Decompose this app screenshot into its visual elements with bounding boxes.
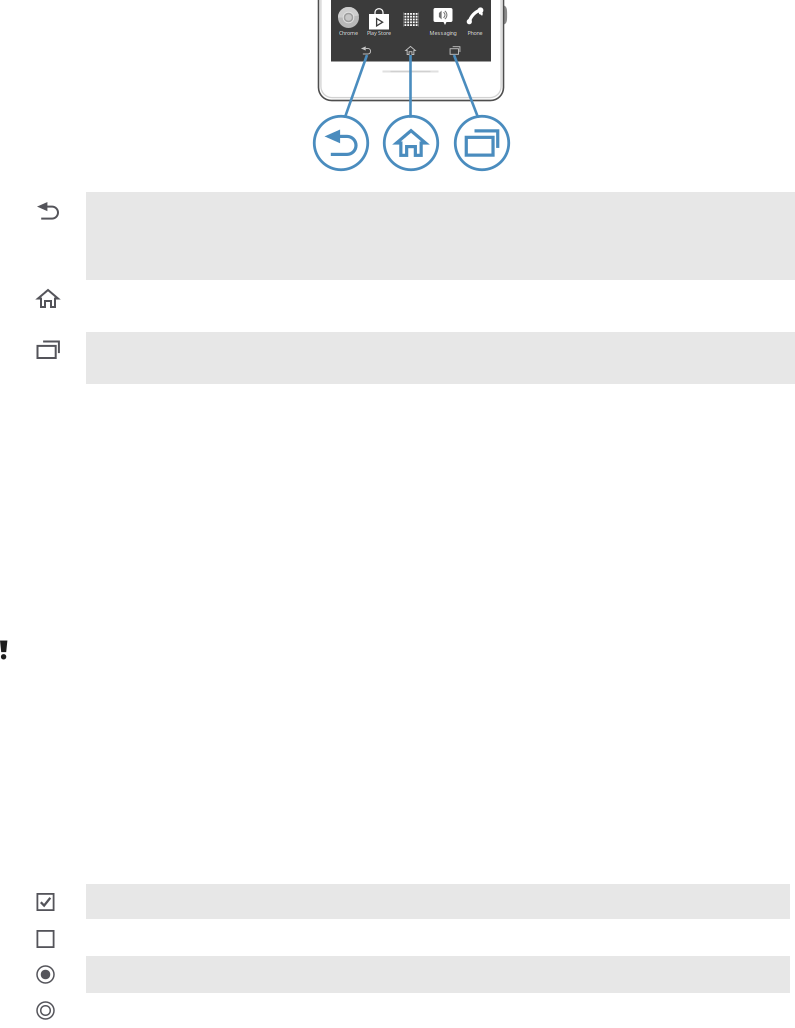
staticText: Phone bbox=[467, 29, 482, 37]
button[interactable]: Unchecked box bbox=[0, 923, 795, 953]
button[interactable]: Back key bbox=[0, 192, 795, 280]
button[interactable]: Unselected option bbox=[0, 995, 795, 1025]
button[interactable]: Recent apps bbox=[455, 116, 509, 170]
staticText: Play Store bbox=[367, 29, 391, 37]
staticText: Chrome bbox=[339, 29, 358, 37]
button[interactable]: Recent apps key bbox=[0, 332, 795, 384]
button[interactable]: Home key bbox=[0, 276, 795, 320]
staticText: Messaging bbox=[429, 29, 456, 37]
button[interactable]: Selected option bbox=[0, 956, 795, 993]
button[interactable]: Checked box bbox=[0, 884, 795, 919]
button[interactable]: Back bbox=[314, 116, 368, 170]
button[interactable]: Home bbox=[384, 116, 438, 170]
